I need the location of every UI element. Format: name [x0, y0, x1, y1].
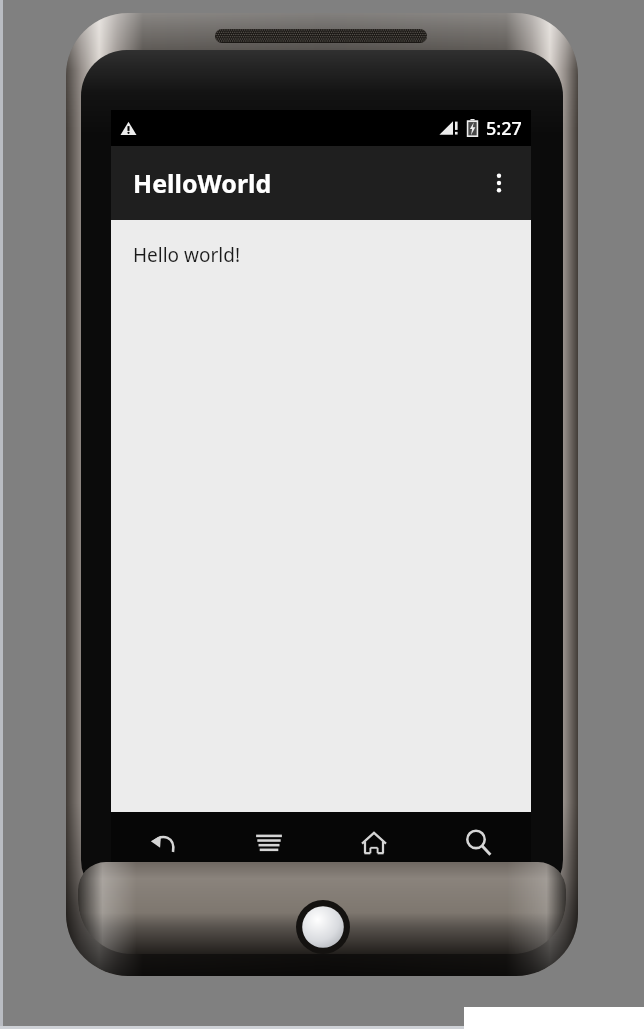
staticText: Hello world!: [133, 242, 241, 268]
button[interactable]: Home: [321, 812, 426, 874]
staticText: 5:27: [486, 116, 522, 141]
button[interactable]: Menu: [216, 812, 321, 874]
button[interactable]: Back: [111, 812, 216, 874]
button[interactable]: More options: [473, 157, 525, 209]
staticText: HelloWorld: [133, 166, 272, 200]
button[interactable]: Search: [426, 812, 531, 874]
button[interactable]: Trackball: [296, 900, 350, 954]
